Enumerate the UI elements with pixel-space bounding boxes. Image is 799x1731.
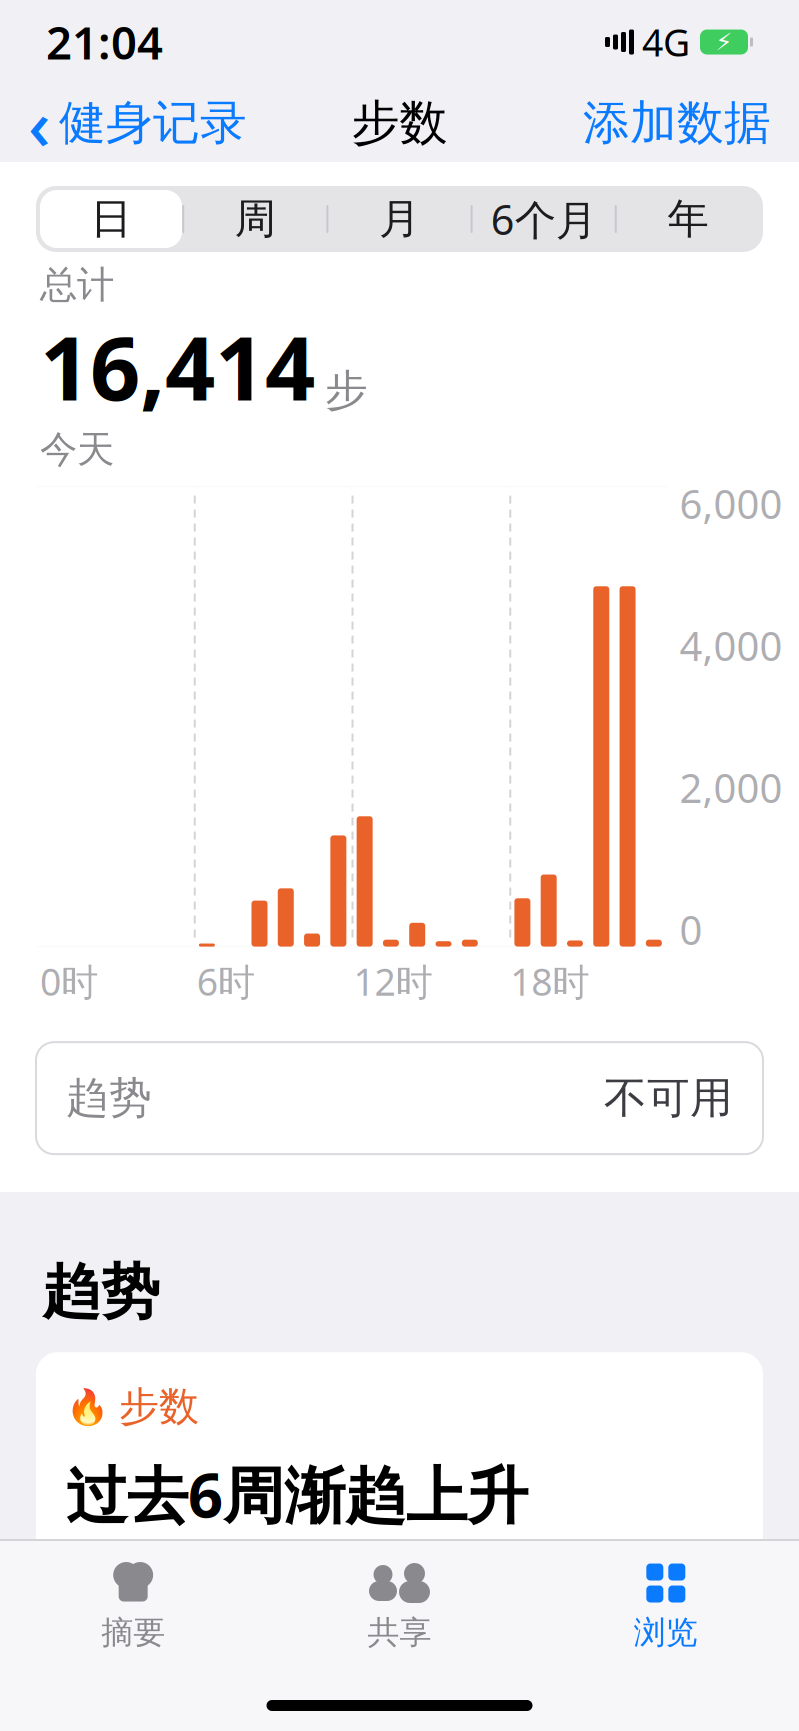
staticText: 4,000 bbox=[679, 619, 782, 672]
staticText: 步数 bbox=[351, 93, 447, 152]
staticText: 共享 bbox=[367, 1613, 431, 1652]
staticText: 6个月 bbox=[491, 192, 597, 246]
staticText: 日 bbox=[91, 194, 132, 244]
staticText: 趋势 bbox=[66, 1072, 152, 1124]
staticText: 🔥 bbox=[66, 1387, 109, 1427]
staticText: 趋势 bbox=[42, 1256, 160, 1328]
button[interactable]: 🔥 bbox=[36, 1352, 763, 1711]
staticText: 21:04 bbox=[46, 12, 163, 72]
button[interactable]: 趋势 bbox=[36, 1042, 763, 1154]
staticText: ‹ bbox=[28, 77, 51, 169]
staticText: 添加数据 bbox=[583, 94, 771, 152]
button[interactable]: 添加数据 bbox=[583, 86, 771, 160]
staticText: 过去6周渐趋上升 bbox=[66, 1453, 528, 1535]
button[interactable]: 月 bbox=[328, 190, 471, 248]
staticText: 健身记录 bbox=[59, 94, 247, 152]
staticText: 年 bbox=[667, 194, 708, 244]
staticText: 6时 bbox=[197, 957, 255, 1006]
staticText: 0 bbox=[679, 903, 702, 956]
staticText: 12时 bbox=[353, 957, 432, 1006]
staticText: 今天 bbox=[40, 427, 114, 473]
button[interactable]: ‹ bbox=[28, 69, 247, 177]
staticText: ⚡︎ bbox=[715, 28, 732, 56]
button[interactable]: 共享 bbox=[266, 1557, 533, 1656]
staticText: 周 bbox=[235, 194, 276, 244]
staticText: 6,000 bbox=[679, 477, 782, 530]
staticText: 步 bbox=[325, 364, 368, 417]
staticText: 18时 bbox=[510, 957, 589, 1006]
staticText: 0时 bbox=[40, 957, 98, 1006]
staticText: 浏览 bbox=[634, 1613, 698, 1652]
staticText: 4G bbox=[642, 17, 690, 67]
staticText: 不可用 bbox=[604, 1072, 733, 1124]
staticText: 步数 bbox=[119, 1382, 199, 1431]
staticText: 总计 bbox=[40, 262, 114, 308]
button[interactable]: 日 bbox=[40, 190, 182, 248]
staticText: 13,803 bbox=[601, 1561, 733, 1617]
button[interactable]: 浏览 bbox=[533, 1557, 799, 1656]
button[interactable]: 年 bbox=[617, 190, 759, 248]
staticText: 2,000 bbox=[679, 761, 782, 814]
button[interactable]: 6个月 bbox=[473, 190, 615, 248]
staticText: 月 bbox=[379, 194, 420, 244]
staticText: 16,414 bbox=[40, 308, 315, 425]
staticText: 9,812 步 bbox=[66, 1573, 219, 1626]
button[interactable]: 摘要 bbox=[0, 1557, 266, 1656]
button[interactable]: 周 bbox=[184, 190, 326, 248]
staticText: 摘要 bbox=[101, 1613, 165, 1652]
